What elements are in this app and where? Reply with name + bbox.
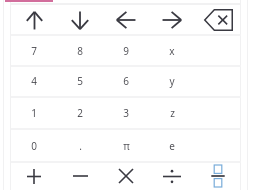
button[interactable]: . xyxy=(57,130,103,161)
staticText: . xyxy=(79,139,82,153)
button[interactable]: Plus xyxy=(11,162,57,190)
button[interactable]: Minus xyxy=(57,162,103,190)
staticText: e xyxy=(169,139,175,153)
staticText: 9 xyxy=(123,44,129,58)
staticText: 8 xyxy=(77,44,83,58)
staticText: 7 xyxy=(31,44,37,58)
button[interactable]: z xyxy=(149,98,195,128)
staticText: y xyxy=(169,74,175,88)
button[interactable]: Move up xyxy=(11,5,57,35)
button[interactable]: Backspace xyxy=(195,5,241,35)
button[interactable]: 0 xyxy=(11,130,57,161)
button[interactable]: 5 xyxy=(57,66,103,96)
button[interactable]: Divide xyxy=(149,162,195,190)
button[interactable]: 6 xyxy=(103,66,149,96)
button[interactable]: y xyxy=(149,66,195,96)
button[interactable]: e xyxy=(149,130,195,161)
button[interactable]: Move left xyxy=(103,5,149,35)
button[interactable]: Multiply xyxy=(103,162,149,190)
button[interactable]: 1 xyxy=(11,98,57,128)
button[interactable]: Move right xyxy=(149,5,195,35)
staticText: 0 xyxy=(31,139,37,153)
staticText: x xyxy=(169,44,175,58)
button[interactable]: 7 xyxy=(11,36,57,65)
button[interactable]: 8 xyxy=(57,36,103,65)
staticText: z xyxy=(170,106,175,120)
button[interactable]: Move down xyxy=(57,5,103,35)
button[interactable]: 9 xyxy=(103,36,149,65)
button[interactable]: x xyxy=(149,36,195,65)
staticText: 4 xyxy=(31,74,37,88)
button[interactable]: Fraction xyxy=(195,162,241,190)
staticText: π xyxy=(123,139,130,153)
staticText: 2 xyxy=(77,106,83,120)
button[interactable]: 4 xyxy=(11,66,57,96)
button[interactable]: π xyxy=(103,130,149,161)
button[interactable]: 2 xyxy=(57,98,103,128)
staticText: 1 xyxy=(31,106,37,120)
staticText: 6 xyxy=(123,74,129,88)
staticText: 5 xyxy=(77,74,83,88)
button[interactable]: 3 xyxy=(103,98,149,128)
staticText: 3 xyxy=(123,106,129,120)
